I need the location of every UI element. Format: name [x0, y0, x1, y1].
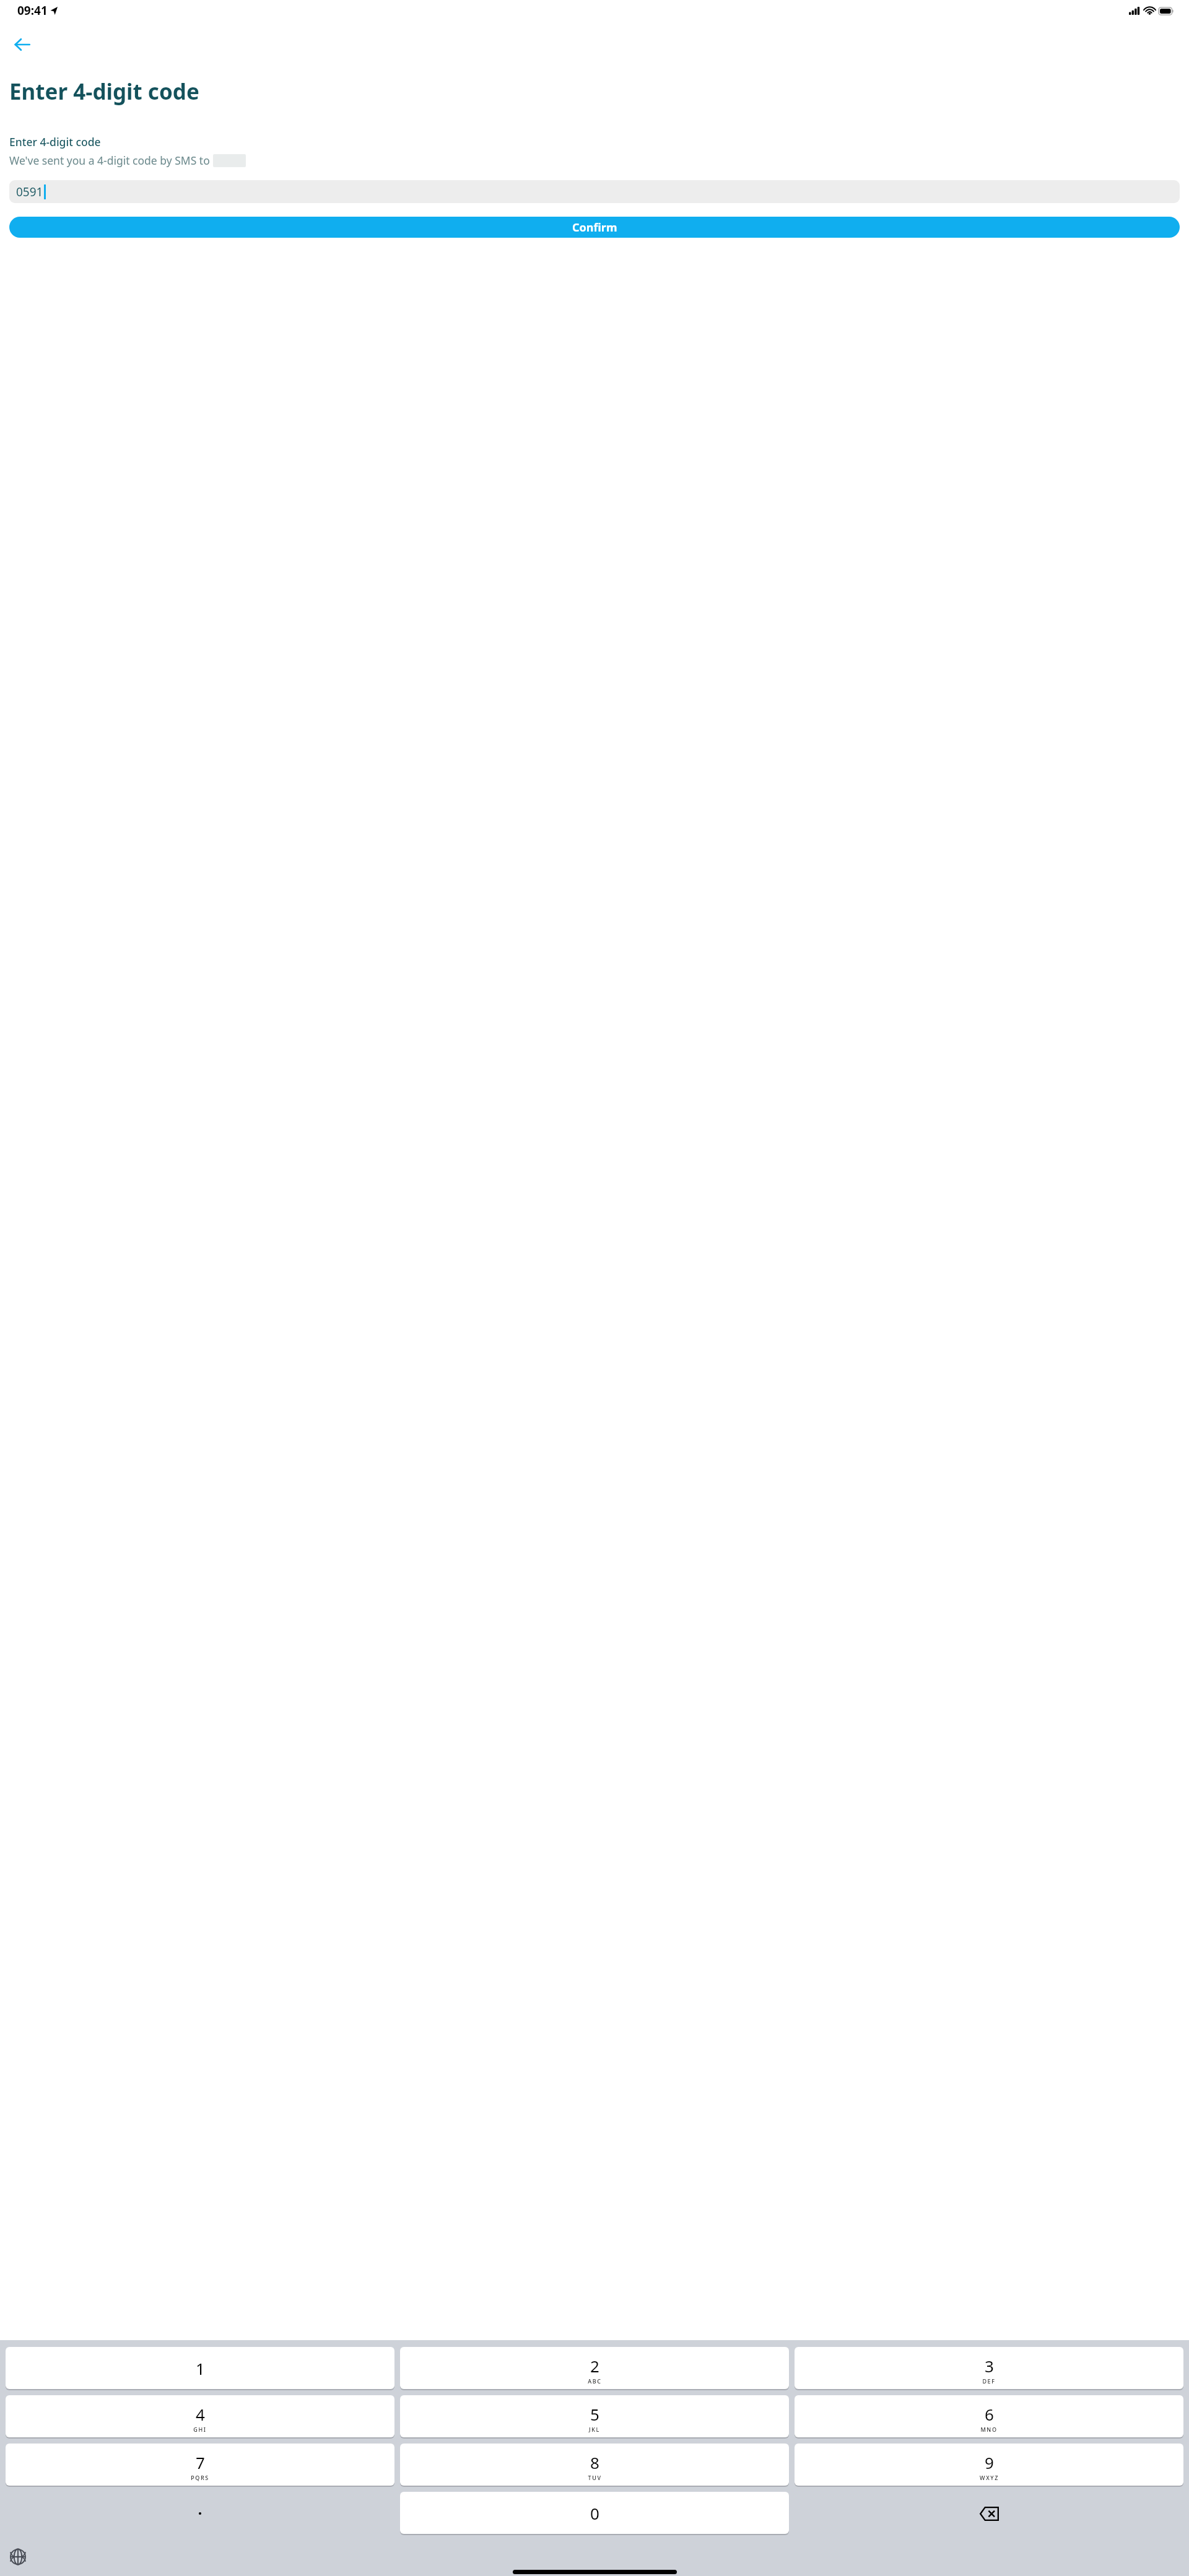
staticText: 3 — [985, 2355, 994, 2377]
staticText: JKL — [589, 2426, 600, 2433]
staticText: MNO — [980, 2426, 998, 2433]
button[interactable]: 6 — [795, 2395, 1183, 2437]
button[interactable]: 8 — [400, 2444, 789, 2486]
staticText: 0 — [590, 2502, 599, 2524]
staticText: Confirm — [572, 220, 617, 235]
staticText: 5 — [590, 2403, 599, 2425]
button[interactable]: Backspace — [795, 2492, 1183, 2535]
staticText: 9 — [985, 2452, 994, 2473]
staticText: GHI — [193, 2426, 207, 2433]
staticText: 0591 — [16, 184, 43, 200]
staticText: 8 — [590, 2452, 599, 2473]
staticText: 4 — [196, 2403, 205, 2425]
button[interactable]: 1 — [6, 2347, 394, 2389]
button[interactable]: 5 — [400, 2395, 789, 2437]
button[interactable]: Back — [9, 31, 36, 58]
staticText: TUV — [588, 2474, 602, 2481]
staticText: 7 — [196, 2452, 205, 2473]
staticText: 1 — [196, 2357, 205, 2379]
staticText: DEF — [982, 2377, 996, 2385]
button[interactable]: period — [6, 2492, 394, 2535]
staticText: WXYZ — [980, 2474, 999, 2481]
button[interactable]: 7 — [6, 2444, 394, 2486]
button[interactable]: 4 — [6, 2395, 394, 2437]
staticText: 2 — [590, 2355, 599, 2377]
button[interactable]: Confirm — [9, 217, 1180, 238]
button[interactable]: 0591 — [9, 180, 1180, 203]
button[interactable]: 9 — [795, 2444, 1183, 2486]
staticText: Enter 4-digit code — [9, 77, 199, 106]
button[interactable]: 2 — [400, 2347, 789, 2389]
button[interactable]: Change keyboard language — [5, 2544, 31, 2570]
staticText: 09:41 — [17, 2, 48, 19]
button[interactable]: 0 — [400, 2492, 789, 2534]
staticText: Enter 4-digit code — [9, 134, 101, 149]
staticText: ABC — [588, 2377, 602, 2385]
staticText: PQRS — [191, 2474, 209, 2481]
staticText: 6 — [985, 2403, 994, 2425]
button[interactable]: 3 — [795, 2347, 1183, 2389]
staticText: We've sent you a 4-digit code by SMS to — [9, 153, 213, 168]
